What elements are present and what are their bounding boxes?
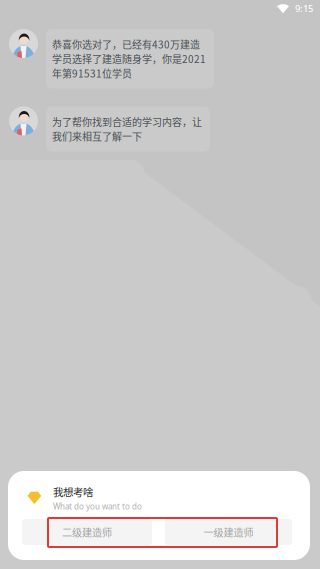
staticText: 9:15 (295, 2, 313, 15)
staticText: What do you want to do (53, 501, 142, 512)
staticText: 一级建造师 (203, 525, 253, 539)
staticText: 二级建造师 (62, 525, 112, 539)
staticText: 恭喜你选对了，已经有430万建造 学员选择了建造随身学，你是2021 年第915… (52, 37, 206, 80)
staticText: 我想考啥 (53, 484, 93, 499)
button[interactable]: 一级建造师 (165, 519, 292, 545)
button[interactable]: 二级建造师 (22, 519, 152, 545)
staticText: 为了帮你找到合适的学习内容，让 我们来相互了解一下 (52, 114, 202, 143)
